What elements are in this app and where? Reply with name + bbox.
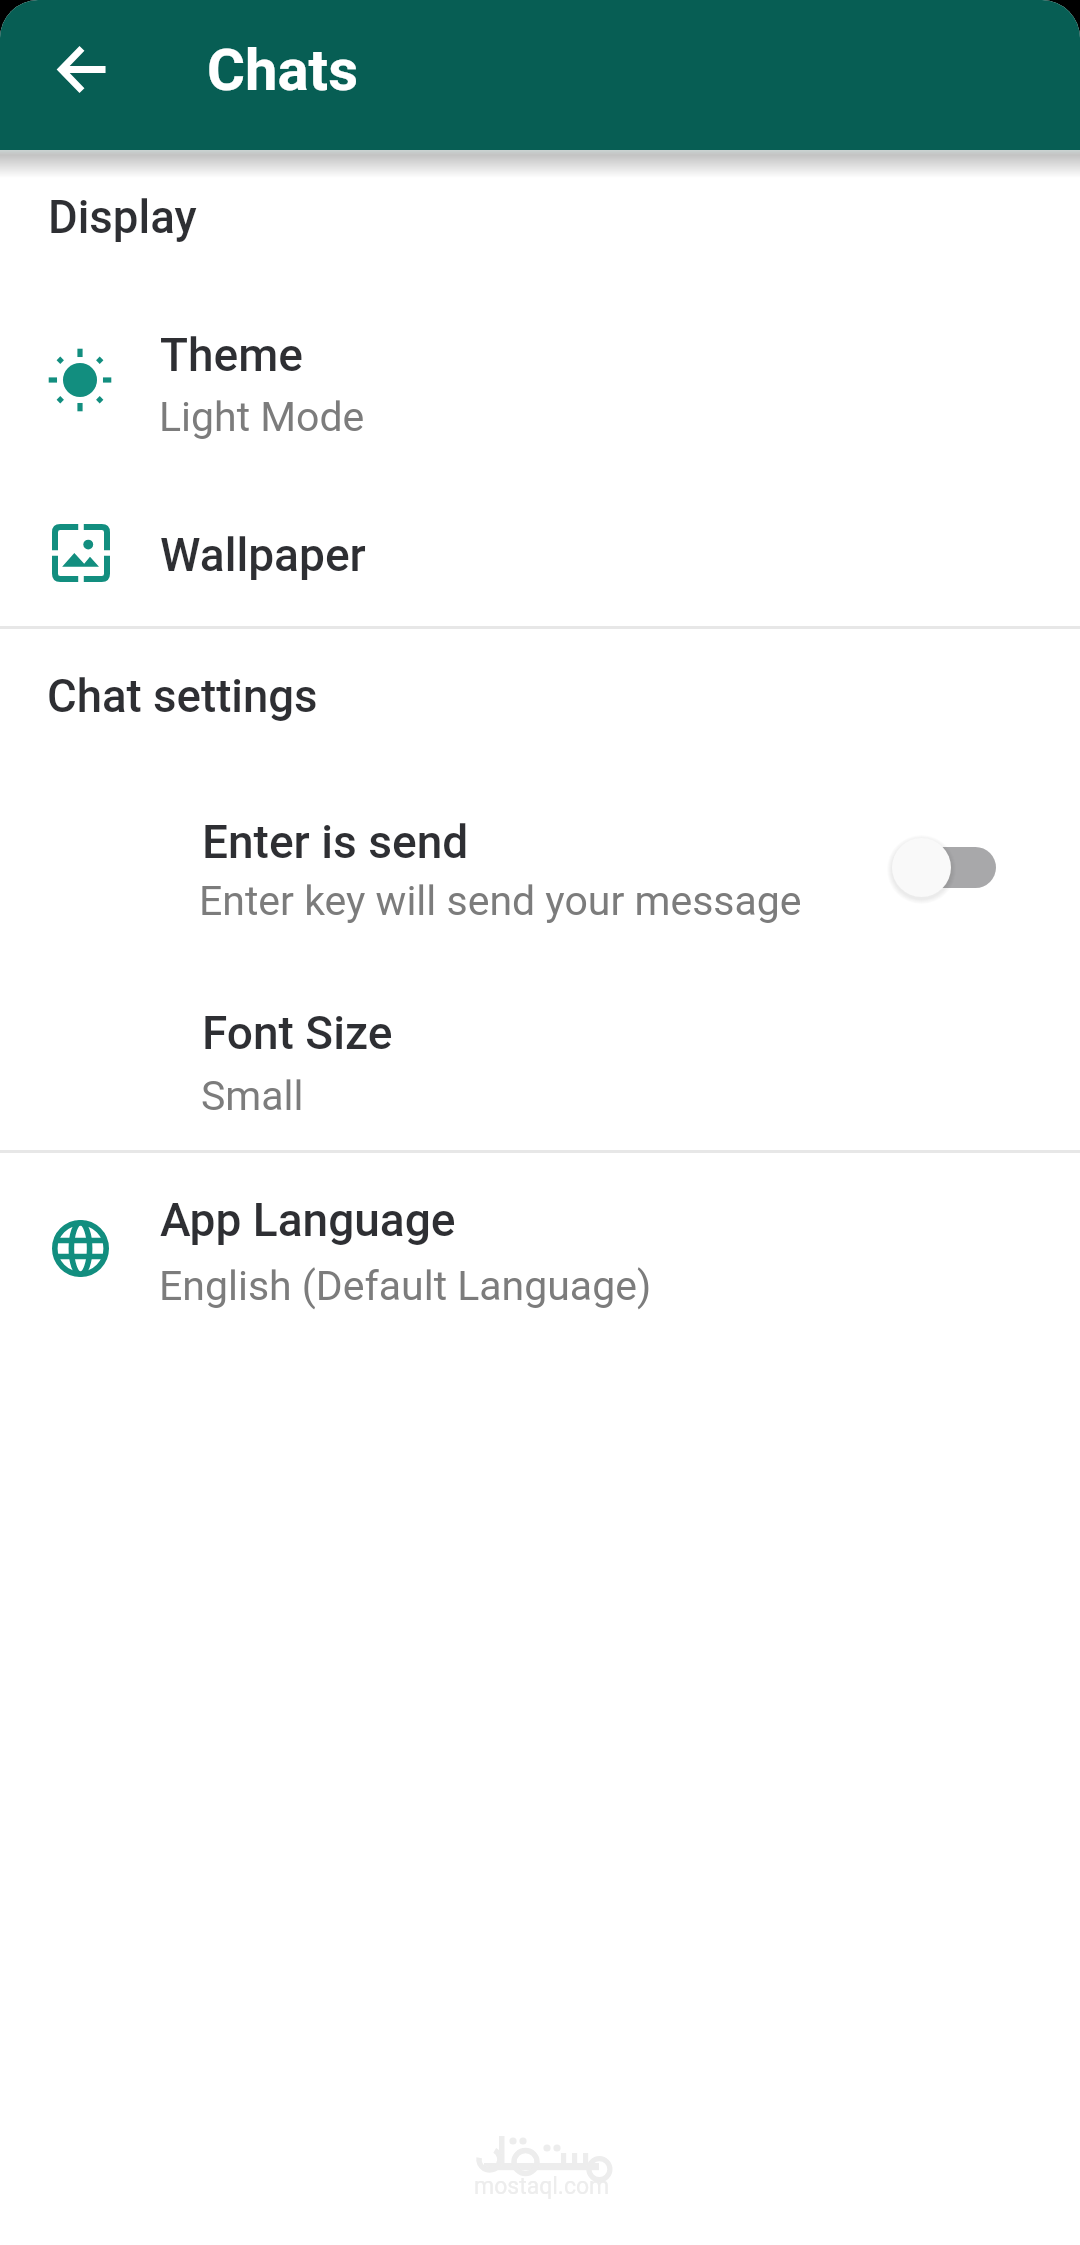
staticText: Wallpaper xyxy=(160,528,366,582)
button[interactable]: Enter is send toggle xyxy=(892,838,1012,922)
button[interactable]: App Language xyxy=(0,1168,1080,1330)
staticText: Enter is send xyxy=(202,815,469,869)
staticText: Enter key will send your message xyxy=(199,877,802,925)
button[interactable]: Font Size xyxy=(0,985,1080,1143)
staticText: Display xyxy=(48,191,197,244)
button[interactable]: Wallpaper xyxy=(0,494,1080,612)
staticText: Theme xyxy=(160,328,303,382)
staticText: mostaql.com xyxy=(474,2173,610,2200)
button[interactable]: Back xyxy=(37,23,129,115)
staticText: App Language xyxy=(160,1193,456,1247)
staticText: English (Default Language) xyxy=(159,1262,652,1310)
staticText: Font Size xyxy=(202,1006,393,1060)
staticText: Chat settings xyxy=(47,670,318,723)
button[interactable]: Enter is send xyxy=(0,790,1080,950)
staticText: Light Mode xyxy=(159,393,365,441)
staticText: Small xyxy=(201,1072,304,1120)
button[interactable]: Theme xyxy=(0,300,1080,462)
staticText: Chats xyxy=(207,36,359,104)
